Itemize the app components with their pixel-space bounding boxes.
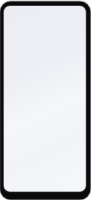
button[interactable]: Tempered glass screen protector [0, 0, 91, 200]
